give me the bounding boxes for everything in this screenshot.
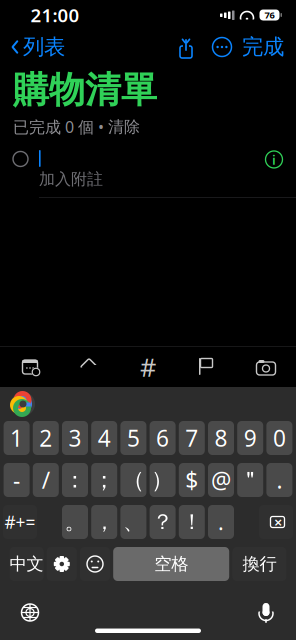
button[interactable]: 中文 [10, 547, 44, 581]
button[interactable]: 6 [150, 421, 176, 455]
staticText: #+= [4, 510, 35, 533]
staticText: 。 [64, 509, 85, 535]
button[interactable]: / [33, 463, 59, 497]
button[interactable]: ？ [150, 505, 176, 539]
staticText: 1 [10, 423, 23, 453]
staticText: ！ [181, 509, 202, 535]
button[interactable]: Add tag [118, 349, 177, 385]
button[interactable]: 9 [237, 421, 263, 455]
button[interactable]: 。 [62, 505, 88, 539]
staticText: ； [93, 466, 116, 494]
button[interactable]: @ [208, 463, 234, 497]
staticText: ： [63, 466, 86, 494]
staticText: 已完成 0 個 [13, 116, 94, 137]
staticText: 21:00 [30, 3, 79, 27]
button[interactable]: $ [179, 463, 205, 497]
button[interactable]: ＂ [237, 463, 263, 497]
button[interactable]: 1 [4, 421, 30, 455]
button[interactable]: . [208, 505, 234, 539]
staticText: 6 [156, 423, 169, 453]
staticText: @ [211, 465, 231, 495]
button[interactable]: 3 [62, 421, 88, 455]
button[interactable]: 完成 [242, 28, 296, 66]
staticText: / [42, 465, 50, 495]
staticText: ） [151, 466, 174, 494]
staticText: 、 [123, 509, 144, 535]
staticText: • [98, 116, 104, 137]
button[interactable]: 列表 [0, 28, 65, 66]
staticText: ， [94, 509, 115, 535]
staticText: 中文 [10, 553, 44, 575]
staticText: × [274, 512, 282, 532]
staticText: . [218, 508, 224, 536]
button[interactable]: More [202, 33, 242, 61]
staticText: $ [185, 465, 198, 495]
button[interactable]: Details [265, 149, 296, 168]
button[interactable]: Emoji [80, 547, 110, 581]
staticText: 加入附註 [39, 169, 103, 189]
staticText: 完成 [242, 34, 284, 60]
staticText: 3 [68, 423, 81, 453]
staticText: . [276, 465, 282, 495]
button[interactable]: 2 [33, 421, 59, 455]
button[interactable]: 0 [266, 421, 292, 455]
staticText: 2 [39, 423, 52, 453]
staticText: i [272, 151, 276, 168]
button[interactable]: ： [62, 463, 88, 497]
button[interactable]: 5 [120, 421, 146, 455]
button[interactable]: Switch keyboard [8, 595, 52, 629]
staticText: 空格 [154, 553, 188, 575]
staticText: 4 [98, 423, 111, 453]
button[interactable]: 空格 [113, 547, 229, 581]
button[interactable]: （ [120, 463, 146, 497]
staticText [39, 146, 44, 171]
button[interactable]: Delete [259, 505, 293, 539]
staticText: 8 [214, 423, 227, 453]
button[interactable]: Add location [59, 349, 118, 385]
staticText: 9 [244, 423, 257, 453]
button[interactable]: 4 [91, 421, 117, 455]
staticText: ？ [152, 509, 173, 535]
button[interactable]: ！ [179, 505, 205, 539]
button[interactable]: 已完成 0 個 [13, 116, 140, 137]
staticText: 購物清單 [13, 68, 157, 112]
button[interactable]: ； [91, 463, 117, 497]
staticText: 7 [185, 423, 198, 453]
staticText: 0 [273, 423, 286, 453]
button[interactable]: ， [91, 505, 117, 539]
button[interactable]: Keyboard settings [47, 547, 77, 581]
button[interactable]: Flag [177, 349, 236, 385]
button[interactable]: . [266, 463, 292, 497]
button[interactable]: 、 [120, 505, 146, 539]
staticText: 5 [127, 423, 140, 453]
staticText: ＂ [239, 466, 262, 494]
staticText: 換行 [242, 553, 276, 575]
button[interactable]: Add photo [236, 349, 295, 385]
staticText: - [13, 465, 20, 495]
button[interactable]: Google [6, 389, 40, 419]
button[interactable]: Add date [0, 349, 59, 385]
button[interactable]: Share [170, 33, 202, 61]
button[interactable]: 8 [208, 421, 234, 455]
staticText: 列表 [23, 34, 65, 60]
button[interactable]: #+= [3, 505, 37, 539]
staticText: 清除 [108, 117, 140, 137]
button[interactable]: 7 [179, 421, 205, 455]
staticText: （ [122, 466, 145, 494]
button[interactable]: 換行 [232, 547, 286, 581]
staticText: # [140, 350, 156, 384]
button[interactable]: - [4, 463, 30, 497]
button[interactable]: ） [150, 463, 176, 497]
button[interactable]: Dictate [244, 595, 288, 629]
staticText: 76 [264, 9, 274, 21]
